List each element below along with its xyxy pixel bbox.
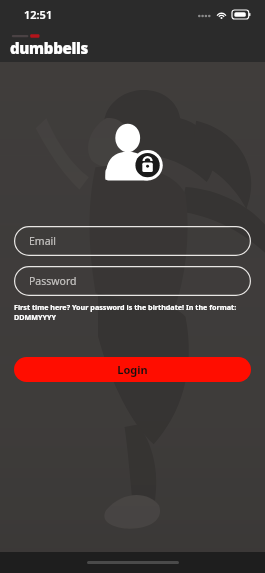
staticText: First time here? Your password is the bi… (14, 302, 237, 322)
staticText: dumbbells (10, 38, 89, 58)
other: Secure account login (102, 119, 164, 181)
staticText: 12:51 (24, 7, 53, 22)
button[interactable]: Password (14, 266, 251, 296)
staticText: Login (117, 362, 148, 377)
staticText: Password (29, 274, 77, 288)
button[interactable]: Login (14, 357, 251, 382)
staticText: Email (29, 234, 56, 248)
button[interactable]: Email (14, 226, 251, 256)
button[interactable]: dumbbells (8, 35, 91, 55)
